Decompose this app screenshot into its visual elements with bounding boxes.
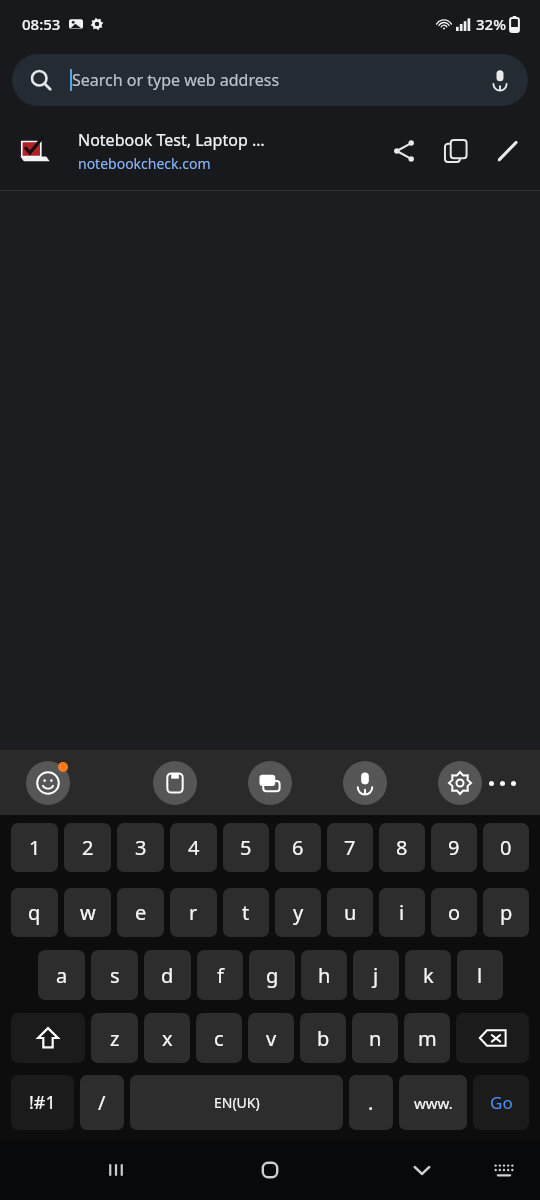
- button[interactable]: Notebook Test, Laptop …: [0, 112, 540, 190]
- staticText: www.: [414, 1093, 453, 1113]
- button[interactable]: Share: [378, 125, 430, 177]
- staticText: o: [448, 899, 461, 926]
- staticText: i: [399, 899, 405, 926]
- staticText: d: [161, 962, 174, 989]
- button[interactable]: u: [327, 888, 373, 937]
- button[interactable]: Keyboard modes: [248, 761, 292, 805]
- staticText: Go: [490, 1091, 513, 1114]
- button[interactable]: 9: [431, 823, 477, 872]
- staticText: 32%: [476, 14, 506, 34]
- staticText: w: [80, 899, 96, 926]
- staticText: 6: [292, 834, 304, 861]
- button[interactable]: Copy: [430, 125, 482, 177]
- button[interactable]: EN(UK): [130, 1075, 343, 1130]
- button[interactable]: Search or type web address: [12, 54, 528, 106]
- staticText: 4: [188, 834, 200, 861]
- button[interactable]: Change keyboard: [482, 1148, 526, 1192]
- staticText: j: [373, 962, 379, 989]
- button[interactable]: j: [353, 950, 399, 1000]
- button[interactable]: b: [300, 1013, 346, 1063]
- staticText: e: [135, 899, 147, 926]
- staticText: r: [189, 899, 198, 926]
- button[interactable]: q: [11, 888, 58, 937]
- button[interactable]: k: [405, 950, 451, 1000]
- staticText: q: [28, 899, 41, 926]
- button[interactable]: !#1: [11, 1075, 74, 1130]
- button[interactable]: Go: [473, 1075, 529, 1130]
- button[interactable]: l: [457, 950, 503, 1000]
- button[interactable]: i: [379, 888, 425, 937]
- button[interactable]: 6: [275, 823, 321, 872]
- staticText: notebookcheck.com: [78, 154, 211, 173]
- staticText: f: [217, 962, 224, 989]
- button[interactable]: z: [91, 1013, 138, 1063]
- staticText: Search or type web address: [72, 69, 280, 91]
- staticText: 5: [240, 834, 252, 861]
- button[interactable]: c: [196, 1013, 242, 1063]
- button[interactable]: x: [144, 1013, 190, 1063]
- button[interactable]: 1: [11, 823, 58, 872]
- button[interactable]: e: [117, 888, 164, 937]
- button[interactable]: g: [249, 950, 295, 1000]
- button[interactable]: t: [223, 888, 269, 937]
- staticText: y: [293, 899, 304, 926]
- staticText: u: [344, 899, 357, 926]
- button[interactable]: Shift: [11, 1013, 85, 1063]
- staticText: c: [214, 1025, 224, 1052]
- staticText: p: [500, 899, 513, 926]
- button[interactable]: f: [197, 950, 243, 1000]
- staticText: s: [110, 962, 120, 989]
- button[interactable]: Backspace: [456, 1013, 529, 1063]
- staticText: k: [423, 962, 434, 989]
- button[interactable]: 7: [327, 823, 373, 872]
- button[interactable]: m: [404, 1013, 450, 1063]
- button[interactable]: Voice search: [478, 58, 522, 102]
- button[interactable]: w: [64, 888, 111, 937]
- button[interactable]: 2: [64, 823, 111, 872]
- button[interactable]: Recents: [92, 1146, 140, 1194]
- button[interactable]: Clipboard: [153, 761, 197, 805]
- button[interactable]: 5: [223, 823, 269, 872]
- button[interactable]: n: [352, 1013, 398, 1063]
- button[interactable]: Settings: [438, 761, 482, 805]
- staticText: t: [242, 899, 250, 926]
- button[interactable]: Voice input: [343, 761, 387, 805]
- button[interactable]: h: [301, 950, 347, 1000]
- staticText: v: [266, 1025, 277, 1052]
- button[interactable]: Home: [246, 1146, 294, 1194]
- button[interactable]: o: [431, 888, 477, 937]
- staticText: 9: [448, 834, 460, 861]
- button[interactable]: 0: [483, 823, 529, 872]
- button[interactable]: p: [483, 888, 529, 937]
- staticText: b: [317, 1025, 330, 1052]
- staticText: 2: [82, 834, 94, 861]
- staticText: .: [368, 1089, 374, 1116]
- button[interactable]: d: [144, 950, 191, 1000]
- button[interactable]: /: [80, 1075, 124, 1130]
- button[interactable]: .: [349, 1075, 393, 1130]
- staticText: m: [418, 1025, 437, 1052]
- staticText: 08:53: [22, 14, 61, 34]
- button[interactable]: y: [275, 888, 321, 937]
- staticText: /: [98, 1089, 106, 1116]
- button[interactable]: s: [91, 950, 138, 1000]
- button[interactable]: Edit: [482, 125, 534, 177]
- staticText: g: [266, 962, 279, 989]
- button[interactable]: v: [248, 1013, 294, 1063]
- button[interactable]: 3: [117, 823, 164, 872]
- button[interactable]: r: [170, 888, 217, 937]
- staticText: l: [477, 962, 483, 989]
- button[interactable]: www.: [399, 1075, 467, 1130]
- button[interactable]: a: [38, 950, 85, 1000]
- staticText: a: [56, 962, 68, 989]
- staticText: Notebook Test, Laptop …: [78, 129, 265, 151]
- button[interactable]: More options: [480, 761, 524, 805]
- button[interactable]: Emoji: [26, 761, 70, 805]
- button[interactable]: 8: [379, 823, 425, 872]
- staticText: 0: [500, 834, 512, 861]
- button[interactable]: Hide keyboard: [398, 1146, 446, 1194]
- button[interactable]: 4: [170, 823, 217, 872]
- staticText: x: [162, 1025, 173, 1052]
- staticText: 1: [29, 834, 41, 861]
- staticText: !#1: [29, 1090, 56, 1115]
